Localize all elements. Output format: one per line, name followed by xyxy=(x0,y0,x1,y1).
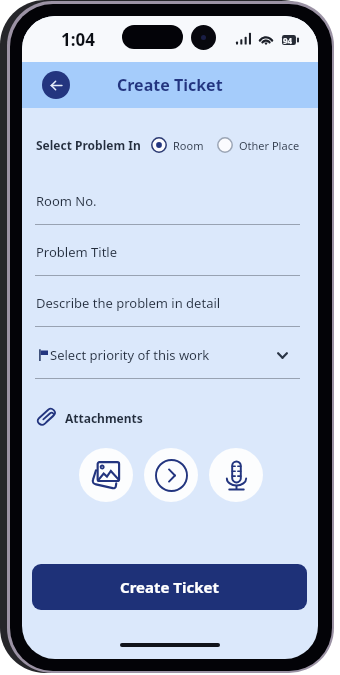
button[interactable]: Create Ticket xyxy=(32,564,307,610)
button[interactable]: Other Place xyxy=(217,137,300,153)
staticText: Room xyxy=(173,138,204,153)
button[interactable]: Pick image xyxy=(79,448,133,502)
staticText: Describe the problem in detail xyxy=(36,294,221,312)
staticText: Other Place xyxy=(239,138,300,153)
button[interactable]: Back xyxy=(42,71,70,99)
staticText: Select Problem In xyxy=(36,137,141,153)
button[interactable]: Record audio xyxy=(209,448,263,502)
staticText: Select priority of this work xyxy=(50,346,210,364)
staticText: Create Ticket xyxy=(117,74,223,96)
staticText: Problem Title xyxy=(36,243,118,261)
staticText: 1:04 xyxy=(61,28,95,51)
staticText: Create Ticket xyxy=(120,577,219,597)
button[interactable]: Room xyxy=(151,137,204,153)
staticText: Attachments xyxy=(65,410,143,426)
button[interactable]: Open xyxy=(144,448,198,502)
staticText: 94 xyxy=(283,35,293,46)
button[interactable]: Select priority of this work xyxy=(35,338,300,372)
staticText: Room No. xyxy=(36,192,97,210)
